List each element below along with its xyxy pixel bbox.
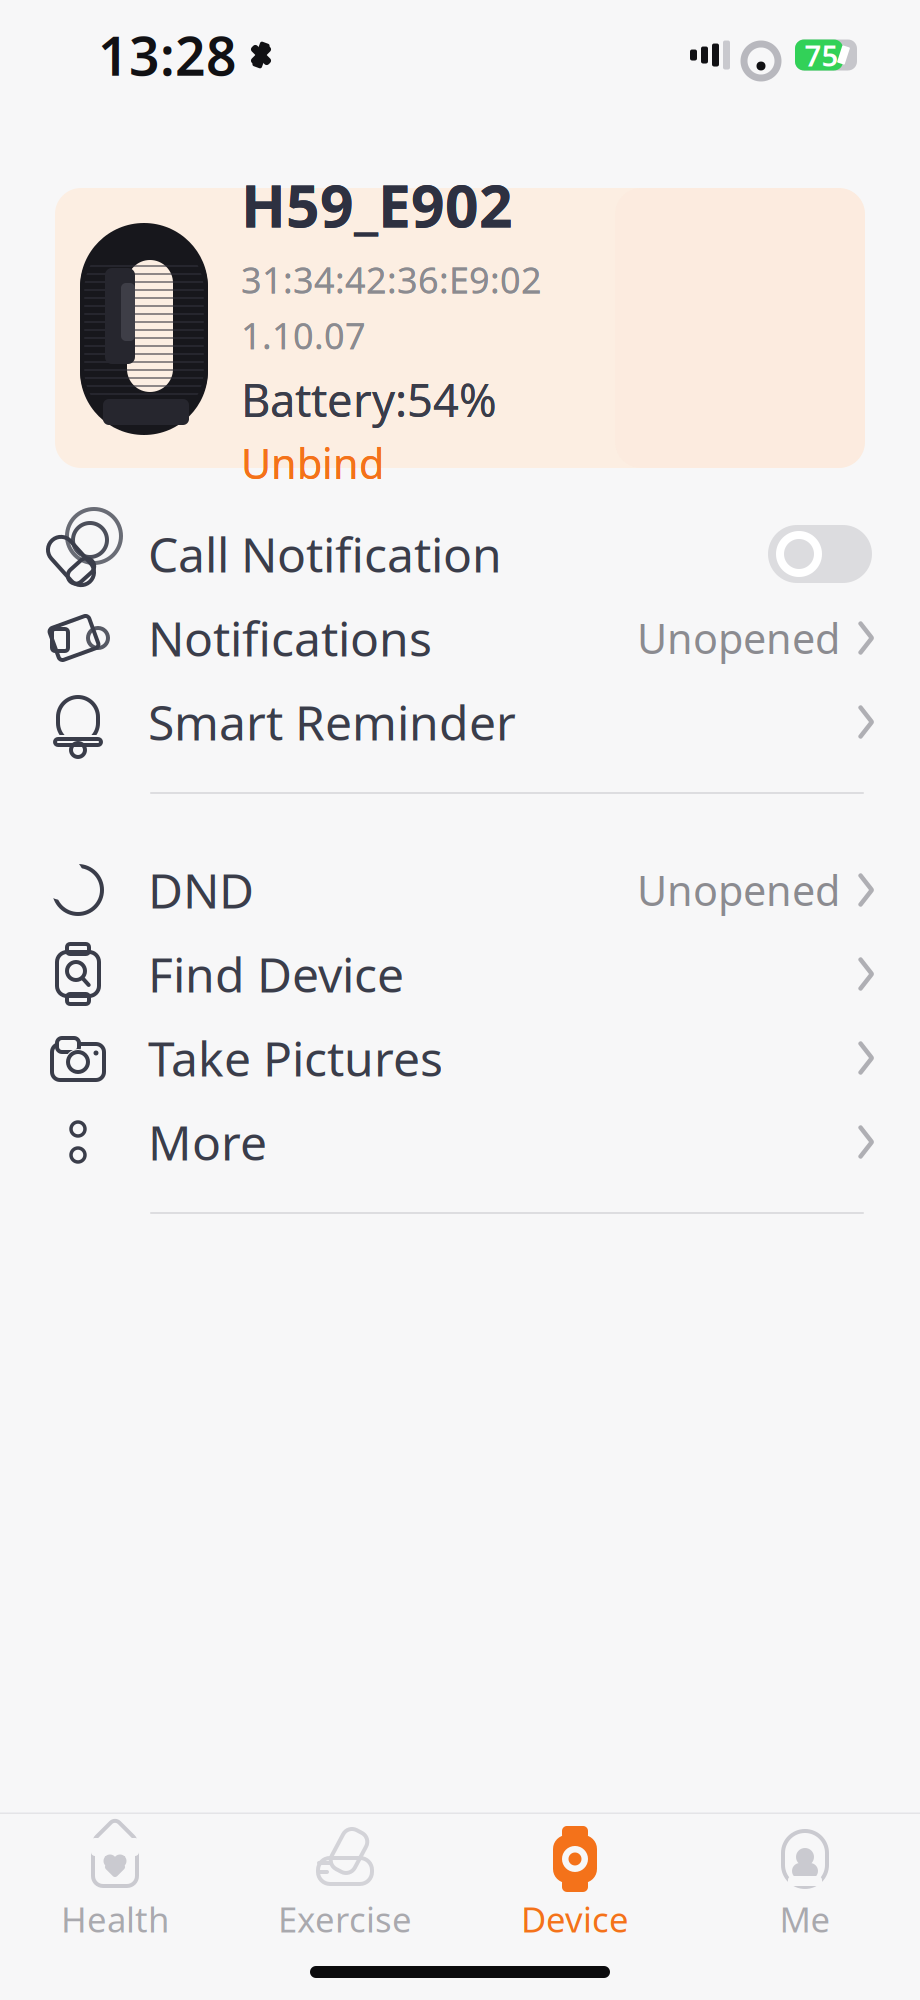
button[interactable]: Unbind — [241, 435, 384, 490]
staticText: Call Notification — [148, 522, 502, 586]
button[interactable]: Smart Reminder — [0, 680, 920, 764]
staticText: Smart Reminder — [148, 690, 516, 754]
staticText: 75 — [804, 35, 838, 74]
staticText: H59_E902 — [241, 166, 513, 244]
button[interactable]: More — [0, 1100, 920, 1184]
staticText: Unopened — [637, 611, 840, 665]
staticText: Notifications — [148, 606, 432, 670]
staticText: Find Device — [148, 942, 404, 1006]
staticText: DND — [148, 858, 254, 922]
staticText: Unopened — [637, 863, 840, 917]
button[interactable]: Notifications — [0, 596, 920, 680]
staticText: Exercise — [278, 1896, 412, 1942]
staticText: More — [148, 1110, 267, 1174]
button[interactable]: Unbind — [241, 435, 384, 490]
button[interactable]: Call Notification — [0, 512, 920, 596]
staticText: 1.10.07 — [241, 311, 366, 359]
staticText: Battery:54% — [241, 369, 497, 429]
staticText: 31:34:42:36:E9:02 — [241, 256, 542, 303]
button[interactable]: Device — [460, 1816, 690, 1942]
staticText: 1.10.07 — [241, 311, 366, 359]
staticText: Health — [61, 1896, 169, 1942]
button[interactable]: Me — [690, 1816, 920, 1942]
staticText: 13:28 — [98, 20, 237, 90]
staticText: H59_E902 — [241, 166, 513, 244]
staticText: Take Pictures — [148, 1026, 443, 1090]
button[interactable]: Take Pictures — [0, 1016, 920, 1100]
button[interactable]: Health — [0, 1816, 230, 1942]
staticText: Me — [779, 1896, 830, 1942]
button[interactable]: DND — [0, 848, 920, 932]
staticText: 31:34:42:36:E9:02 — [241, 256, 542, 303]
staticText: Unbind — [241, 435, 384, 490]
button[interactable]: Exercise — [230, 1816, 460, 1942]
button[interactable]: Find Device — [0, 932, 920, 1016]
staticText: Unbind — [241, 435, 384, 490]
staticText: Device — [521, 1896, 629, 1942]
staticText: Battery:54% — [241, 369, 497, 429]
